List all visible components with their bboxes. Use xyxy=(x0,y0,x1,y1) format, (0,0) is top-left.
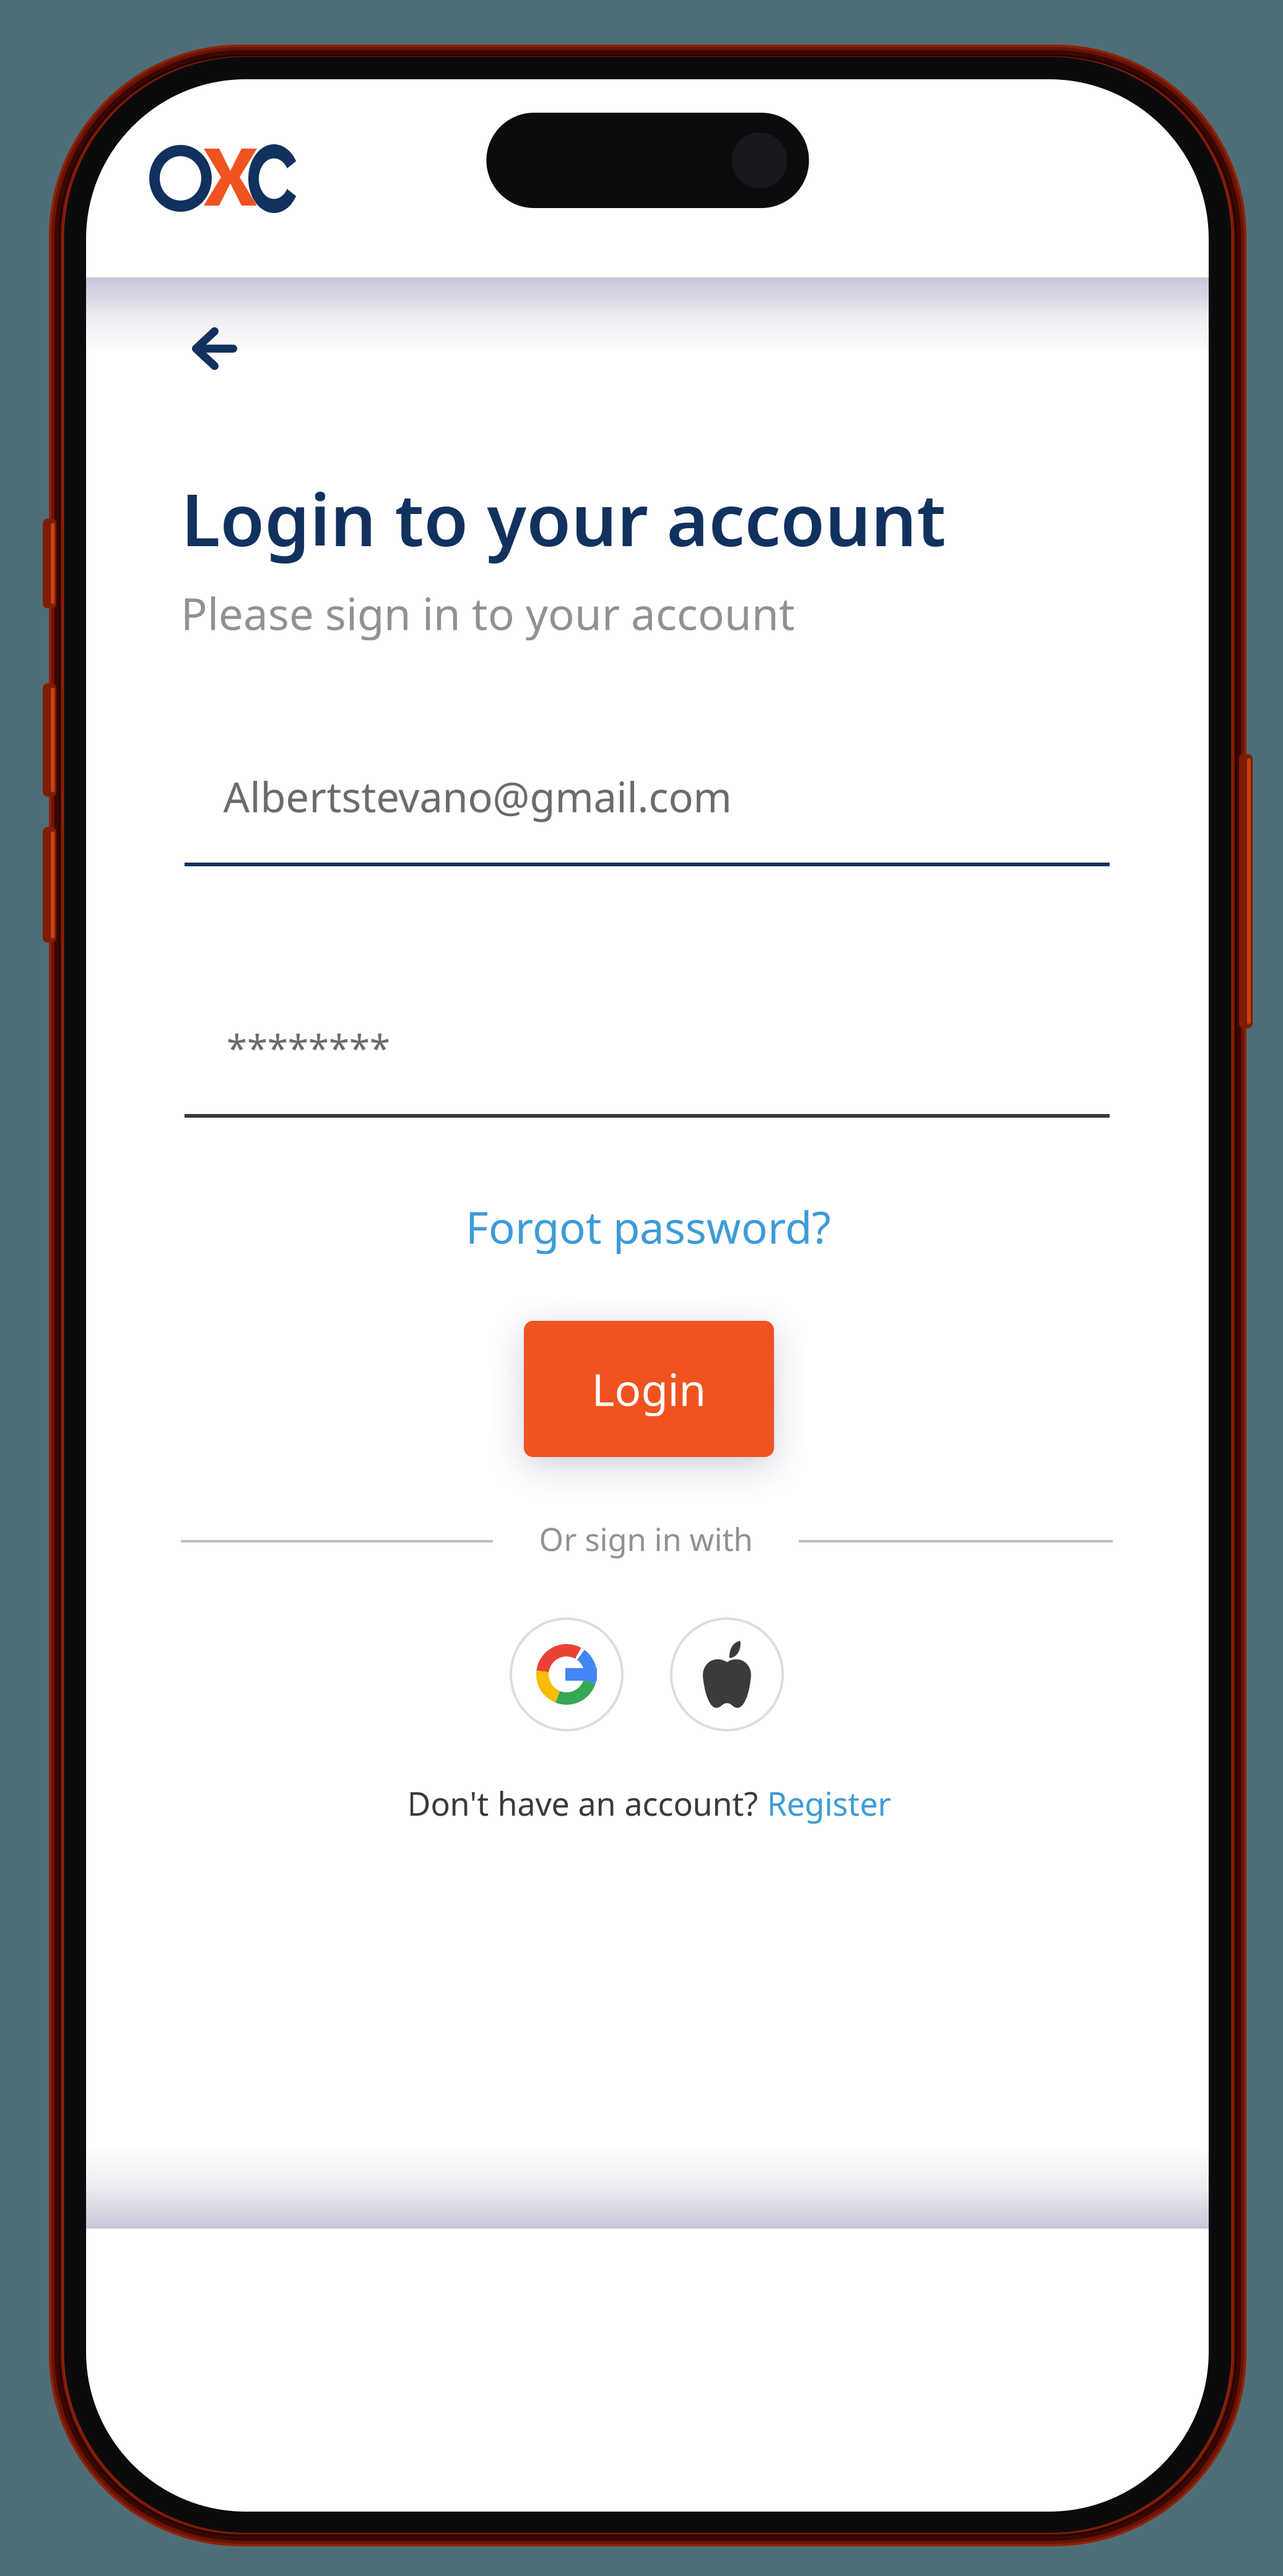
staticText: Don't have an account? xyxy=(407,1782,767,1825)
staticText: Please sign in to your account xyxy=(181,584,795,642)
staticText: Forgot password? xyxy=(466,1198,831,1256)
staticText: Register xyxy=(767,1782,891,1825)
button[interactable]: Sign in with Apple xyxy=(671,1619,783,1730)
staticText: Or sign in with xyxy=(539,1518,753,1560)
button[interactable]: Login xyxy=(524,1321,774,1457)
button[interactable]: Forgot password? xyxy=(450,1190,846,1264)
staticText: ******** xyxy=(227,1023,390,1072)
button[interactable]: Sign in with Google xyxy=(511,1619,623,1730)
staticText: Albertstevano@gmail.com xyxy=(223,769,732,824)
staticText: Login xyxy=(592,1360,706,1418)
button[interactable]: Don't have an account? xyxy=(383,1772,915,1834)
staticText: Login to your account xyxy=(181,471,946,566)
button[interactable]: Back xyxy=(168,305,261,392)
